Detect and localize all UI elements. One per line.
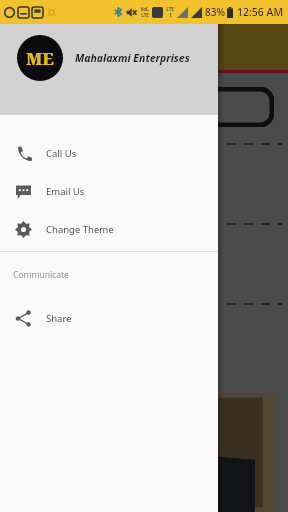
button[interactable]: ME	[0, 0, 218, 115]
staticText: 1	[169, 12, 172, 18]
staticText: 83%	[205, 5, 225, 19]
staticText: Change Theme	[46, 223, 114, 236]
button[interactable]: Share	[0, 299, 218, 337]
button[interactable]	[12, 393, 276, 512]
button[interactable]: Accessories	[0, 145, 288, 223]
staticText: LTE	[166, 6, 174, 12]
button[interactable]: Change Theme	[0, 210, 218, 248]
staticText: Mahalaxmi Enterprises	[75, 51, 190, 65]
staticText: Email Us	[46, 185, 85, 198]
button[interactable]: Call Us	[0, 134, 218, 172]
staticText: ME	[26, 47, 54, 70]
button[interactable]: Email Us	[0, 172, 218, 210]
button[interactable]: Accessories	[0, 305, 288, 383]
button[interactable]	[14, 87, 274, 127]
button[interactable]: Accessories	[0, 225, 288, 303]
staticText: Call Us	[46, 147, 77, 160]
staticText: VoL	[140, 6, 149, 12]
staticText: Communicate	[13, 269, 69, 281]
staticText: 12:56 AM	[237, 5, 284, 19]
staticText: LTE	[141, 12, 149, 18]
staticText: Share	[46, 312, 72, 325]
